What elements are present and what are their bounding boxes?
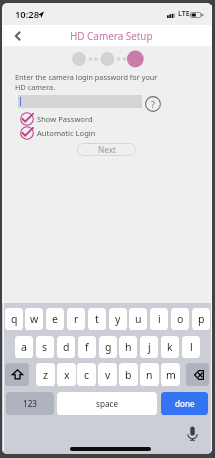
button[interactable]: Shift [5,363,29,386]
button[interactable]: o [171,308,189,330]
staticText: done [175,398,195,409]
button[interactable]: a [15,336,33,358]
button[interactable]: v [98,363,117,386]
staticText: o [177,312,184,326]
staticText: Automatic Login [37,128,96,138]
staticText: l [190,340,193,354]
staticText: space [96,398,119,409]
button[interactable]: done [161,392,208,415]
staticText: ? [151,98,155,110]
staticText: t [95,312,99,326]
button[interactable]: h [119,336,137,358]
staticText: LTE [178,9,190,19]
staticText: w [30,312,39,326]
staticText: v [105,368,111,382]
button[interactable]: x [57,363,76,386]
staticText: b [125,368,132,382]
button[interactable]: p [192,308,210,330]
button[interactable]: i [150,308,168,330]
staticText: i [158,312,161,326]
staticText: x [64,368,70,382]
button[interactable]: s [36,336,54,358]
staticText: d [63,340,70,354]
button[interactable]: 123 [6,392,54,415]
staticText: 123 [23,398,38,409]
staticText: p [198,312,205,326]
button[interactable]: w [25,308,43,330]
button[interactable]: c [77,363,96,386]
staticText: c [84,368,90,382]
button[interactable]: q [5,308,23,330]
staticText: r [74,312,79,326]
button[interactable]: space [57,392,157,415]
staticText: HD Camera Setup [70,29,153,42]
staticText: s [42,340,48,354]
button[interactable]: m [161,363,180,386]
staticText: j [148,340,151,354]
staticText: n [146,368,153,382]
staticText: z [43,368,48,382]
button[interactable]: Next [77,143,136,156]
button[interactable]: z [36,363,55,386]
button[interactable]: t [88,308,106,330]
button[interactable]: r [67,308,85,330]
button[interactable]: Dictation [185,426,200,442]
staticText: Show Password [37,114,93,124]
button[interactable]: Backspace [186,363,209,386]
button[interactable]: d [57,336,75,358]
button[interactable]: e [46,308,64,330]
staticText: m [166,368,176,382]
staticText: Next [98,144,116,155]
button[interactable] [18,95,142,108]
button[interactable]: n [140,363,159,386]
staticText: a [21,340,27,354]
staticText: q [11,312,18,326]
button[interactable]: b [119,363,138,386]
staticText: e [52,312,58,326]
button[interactable]: Show Password [19,111,93,127]
button[interactable]: k [161,336,179,358]
staticText: g [105,340,112,354]
button[interactable]: j [140,336,158,358]
staticText: u [135,312,142,326]
button[interactable]: y [109,308,127,330]
staticText: f [85,340,89,354]
staticText: y [115,312,121,326]
button[interactable]: l [182,336,200,358]
button[interactable]: Automatic Login [19,125,96,141]
button[interactable]: f [78,336,96,358]
staticText: k [167,340,173,354]
button[interactable]: u [129,308,147,330]
button[interactable]: Back [2,25,24,46]
staticText: Enter the camera login password for your… [15,72,158,92]
button[interactable]: g [99,336,117,358]
button[interactable]: Help [145,96,161,112]
staticText: 10:28 [15,8,40,21]
staticText: h [125,340,132,354]
